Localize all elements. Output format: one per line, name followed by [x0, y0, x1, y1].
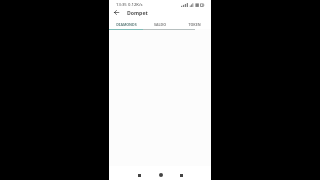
staticText: 0.12K/s [128, 2, 143, 8]
button[interactable]: SALDO [143, 19, 177, 29]
staticText: 13:35 [116, 2, 127, 8]
button[interactable]: DIAMONDS [109, 19, 143, 29]
staticText: Dompet [127, 9, 148, 16]
staticText: DIAMONDS [116, 22, 137, 27]
button[interactable]: Back [110, 7, 122, 18]
button[interactable]: Back [135, 171, 144, 180]
button[interactable]: Home [156, 170, 165, 179]
button[interactable]: Recents [177, 171, 186, 180]
button[interactable]: TOKEN [177, 19, 211, 29]
staticText: SALDO [154, 22, 166, 27]
staticText: TOKEN [188, 22, 201, 27]
